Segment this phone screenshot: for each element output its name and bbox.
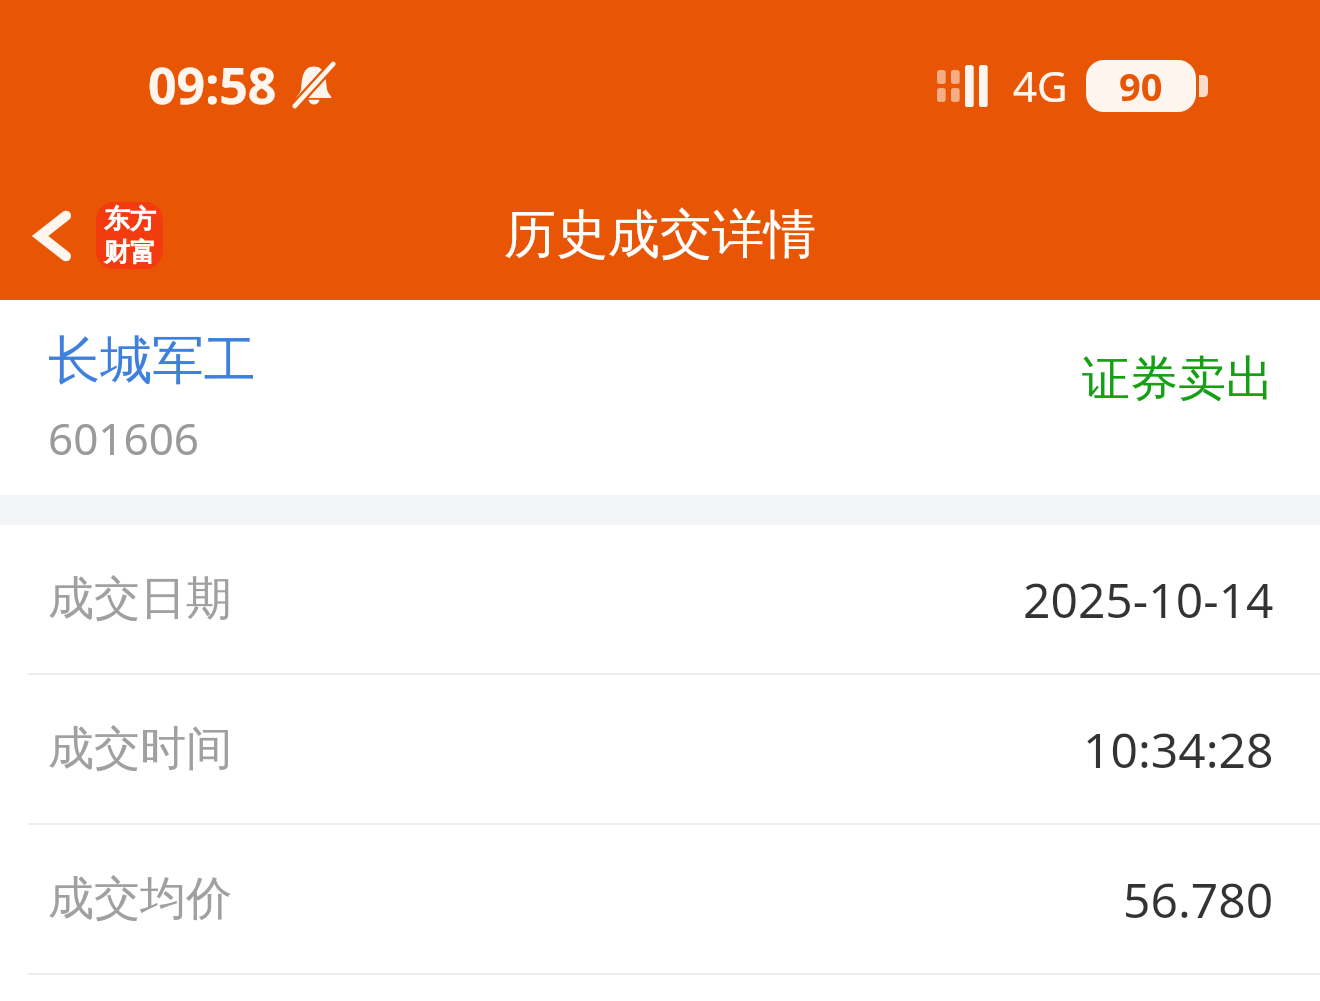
staticText: 2025-10-14 <box>1023 567 1274 632</box>
staticText: 601606 <box>48 408 200 468</box>
button[interactable]: Back <box>0 188 179 283</box>
staticText: 东方 <box>104 203 156 236</box>
staticText: 4G <box>1013 57 1068 114</box>
staticText: 56.780 <box>1123 867 1274 932</box>
other: Silent mode <box>291 62 337 108</box>
staticText: 成交均价 <box>48 870 232 928</box>
staticText: 财富 <box>104 236 156 269</box>
other: Signal strength <box>937 65 993 107</box>
staticText: 10:34:28 <box>1083 717 1274 782</box>
staticText: 证券卖出 <box>1082 349 1274 409</box>
button[interactable]: East Money <box>96 202 163 269</box>
button[interactable]: 成交时间 <box>0 675 1320 823</box>
staticText: 09:58 <box>148 51 277 119</box>
staticText: 成交日期 <box>48 570 232 628</box>
staticText: 90 <box>1119 60 1163 112</box>
staticText: 历史成交详情 <box>504 202 816 268</box>
button[interactable]: 成交日期 <box>0 525 1320 673</box>
button[interactable]: 成交均价 <box>0 825 1320 973</box>
staticText: 成交时间 <box>48 720 232 778</box>
staticText: 长城军工 <box>48 328 256 394</box>
